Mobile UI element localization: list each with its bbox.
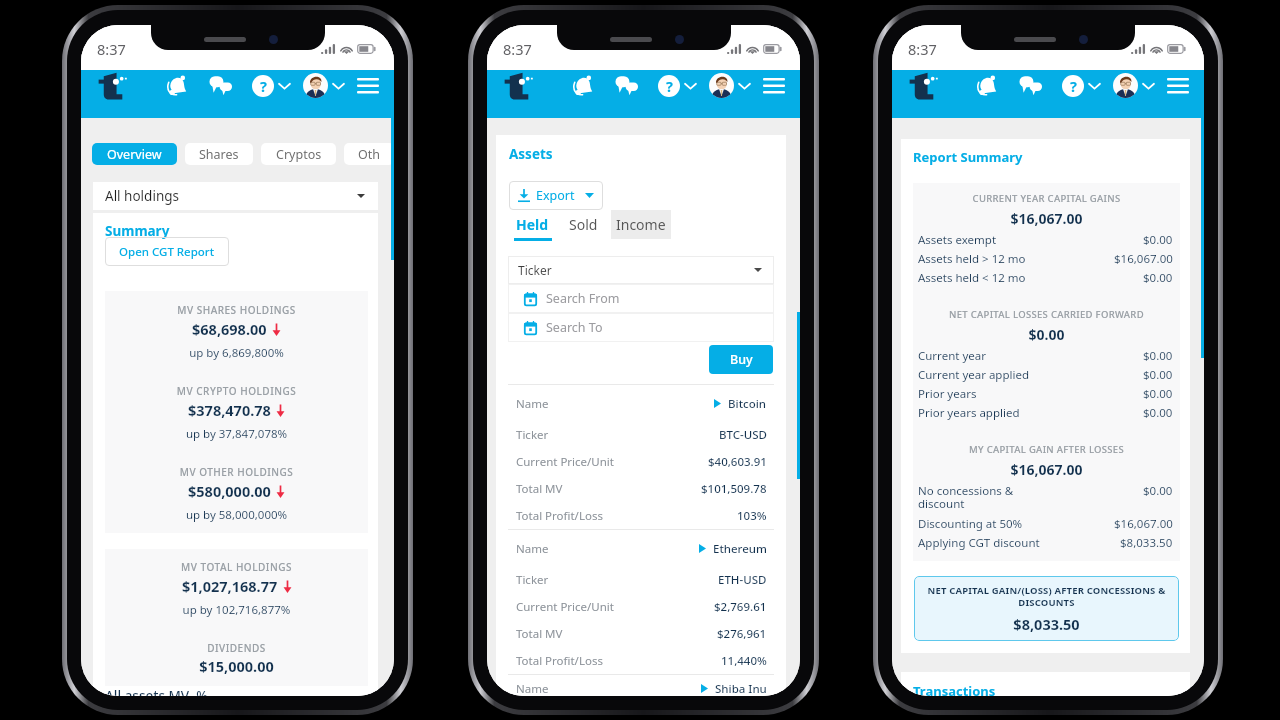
staticText: 8:37 [503, 39, 532, 59]
button[interactable]: All holdings [93, 182, 378, 210]
staticText: All assets MV % [105, 687, 208, 696]
button[interactable]: Notifications [572, 74, 595, 97]
button[interactable]: Menu [357, 78, 379, 93]
staticText: Current Price/Unit [516, 599, 614, 615]
staticText: Search From [546, 290, 620, 307]
staticText: up by 58,000,000% [105, 507, 368, 523]
button[interactable]: Oth [344, 143, 394, 165]
staticText: Total MV [516, 481, 563, 497]
staticText: discount [918, 496, 1173, 512]
button[interactable]: Help [252, 75, 290, 97]
button[interactable]: Search From [508, 284, 774, 313]
staticText: $16,067.00 [913, 460, 1180, 479]
staticText: $68,698.00 [192, 319, 267, 339]
staticText: Assets [509, 145, 553, 163]
button[interactable]: Menu [1167, 78, 1189, 93]
staticText: MY CAPITAL GAIN AFTER LOSSES [913, 443, 1180, 456]
staticText: $16,067.00 [1114, 251, 1173, 267]
button[interactable]: Help [1062, 75, 1100, 97]
staticText: Buy [730, 351, 753, 368]
button[interactable]: Income [611, 210, 671, 239]
staticText: Ticker [516, 427, 549, 443]
button[interactable]: Home [504, 70, 536, 101]
staticText: DIVIDENDS [105, 641, 368, 655]
button[interactable]: Account [303, 73, 344, 98]
staticText: Overview [107, 146, 162, 163]
button[interactable]: Home [98, 70, 130, 101]
staticText: Applying CGT discount [918, 535, 1120, 551]
staticText: Name [516, 396, 549, 412]
button[interactable]: Account [1113, 73, 1154, 98]
button[interactable]: Total Profit/Loss [516, 502, 767, 529]
staticText: MV CRYPTO HOLDINGS [105, 384, 368, 398]
button[interactable]: Ticker [516, 566, 767, 593]
button[interactable]: Notifications [166, 74, 189, 97]
staticText: $0.00 [1143, 405, 1173, 421]
button[interactable]: Open CGT Report [105, 237, 229, 266]
staticText: No concessions & [918, 483, 1143, 496]
button[interactable]: Notifications [976, 74, 999, 97]
staticText: $2,769.61 [714, 599, 767, 615]
button[interactable]: Held [512, 215, 553, 241]
staticText: $580,000.00 [188, 481, 271, 501]
staticText: Ticker [518, 262, 552, 278]
button[interactable]: Help [658, 75, 696, 97]
staticText: $16,067.00 [913, 209, 1180, 228]
button[interactable]: Overview [92, 143, 177, 165]
staticText: $0.00 [913, 325, 1180, 344]
staticText: Assets held > 12 mo [918, 251, 1114, 267]
staticText: NET CAPITAL LOSSES CARRIED FORWARD [913, 308, 1180, 321]
staticText: Prior years applied [918, 405, 1143, 421]
staticText: 11,440% [721, 653, 767, 669]
staticText: Shiba Inu [715, 681, 767, 696]
staticText: Open CGT Report [119, 244, 215, 260]
staticText: up by 6,869,800% [105, 345, 368, 361]
button[interactable]: Total Profit/Loss [516, 647, 767, 674]
button[interactable]: Current Price/Unit [516, 593, 767, 620]
staticText: Cryptos [276, 146, 322, 163]
button[interactable]: Ticker [508, 256, 774, 284]
button[interactable]: Messages [209, 75, 233, 96]
button[interactable]: Total MV [516, 620, 767, 647]
staticText: Held [516, 215, 549, 234]
button[interactable]: Messages [615, 75, 639, 96]
staticText: ETH-USD [718, 572, 767, 588]
staticText: Assets held < 12 mo [918, 270, 1143, 286]
staticText: $276,961 [717, 626, 767, 642]
staticText: Ethereum [713, 541, 767, 557]
button[interactable]: Name [516, 390, 767, 417]
button[interactable]: Name [516, 681, 767, 696]
staticText: Export [536, 187, 575, 204]
button[interactable]: Sold [569, 215, 598, 234]
staticText: Assets exempt [918, 232, 1143, 248]
staticText: Total Profit/Loss [516, 508, 603, 524]
staticText: $0.00 [1143, 483, 1173, 496]
button[interactable]: Buy [709, 345, 773, 374]
button[interactable]: Current Price/Unit [516, 448, 767, 475]
button[interactable]: Search To [508, 313, 774, 342]
staticText: $15,000.00 [105, 656, 368, 676]
staticText: Shares [199, 146, 239, 163]
button[interactable]: Menu [763, 78, 785, 93]
staticText: Transactions [913, 682, 996, 696]
button[interactable]: Shares [185, 143, 253, 165]
staticText: CURRENT YEAR CAPITAL GAINS [913, 192, 1180, 205]
staticText: 8:37 [97, 39, 126, 59]
staticText: Current Price/Unit [516, 454, 614, 470]
staticText: Search To [546, 319, 603, 336]
staticText: $40,603.91 [708, 454, 767, 470]
button[interactable]: Account [709, 73, 750, 98]
button[interactable]: Cryptos [261, 143, 336, 165]
button[interactable]: Home [909, 70, 941, 101]
button[interactable]: Ticker [516, 421, 767, 448]
staticText: $0.00 [1143, 270, 1173, 286]
staticText: Report Summary [913, 148, 1023, 166]
staticText: 103% [737, 508, 767, 524]
staticText: Name [516, 541, 549, 557]
staticText: Prior years [918, 386, 1143, 402]
button[interactable]: Messages [1019, 75, 1043, 96]
button[interactable]: Total MV [516, 475, 767, 502]
staticText: NET CAPITAL GAIN/(LOSS) AFTER CONCESSION… [923, 584, 1170, 609]
button[interactable]: Export [509, 181, 603, 210]
button[interactable]: Name [516, 535, 767, 562]
